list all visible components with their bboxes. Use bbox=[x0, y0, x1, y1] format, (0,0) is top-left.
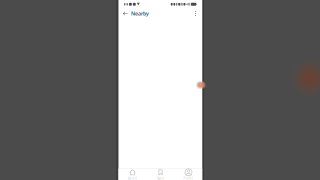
button[interactable]: Profile bbox=[174, 169, 202, 180]
button[interactable]: More options bbox=[191, 8, 199, 18]
staticText: Profile bbox=[183, 177, 193, 180]
staticText: Explore bbox=[127, 177, 137, 180]
button[interactable]: Back to Near me bbox=[118, 8, 149, 18]
staticText: Saved bbox=[157, 177, 164, 180]
staticText: Nearby bbox=[131, 10, 149, 17]
button[interactable]: Explore bbox=[118, 169, 146, 180]
button[interactable]: Saved bbox=[146, 169, 174, 180]
